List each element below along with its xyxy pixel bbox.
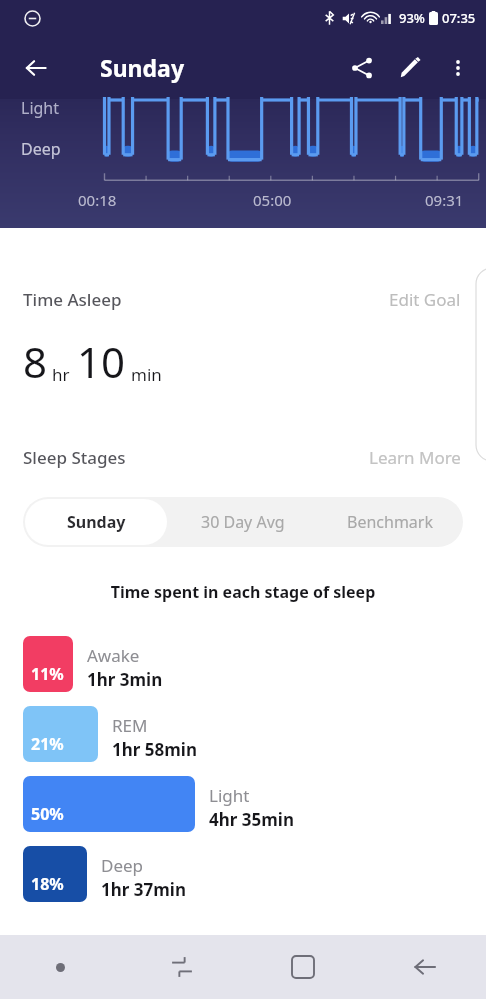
staticText: 11% [31, 663, 64, 685]
button[interactable]: 50% [23, 776, 470, 832]
staticText: 07:35 [442, 9, 476, 27]
button[interactable]: 11% [23, 636, 470, 692]
staticText: 1hr 37min [101, 878, 186, 901]
staticText: Edit Goal [389, 288, 461, 311]
staticText: Learn More [369, 446, 461, 469]
button[interactable]: Home [242, 935, 364, 999]
staticText: 18% [31, 873, 64, 895]
staticText: 8 [23, 333, 48, 390]
staticText: 05:00 [253, 190, 292, 210]
staticText: 1hr 3min [87, 668, 163, 691]
staticText: hr [52, 363, 70, 386]
button[interactable]: More options [434, 44, 482, 92]
staticText: Deep [21, 138, 61, 160]
button[interactable]: 18% [23, 846, 470, 902]
staticText: 21% [31, 733, 64, 755]
staticText: REM [112, 714, 148, 737]
button[interactable]: Back [364, 935, 486, 999]
staticText: Benchmark [347, 511, 433, 533]
staticText: 00:18 [78, 190, 117, 210]
button[interactable]: 30 Day Avg [169, 497, 316, 547]
staticText: Light [21, 97, 60, 119]
staticText: Time Asleep [23, 288, 122, 311]
button[interactable]: Sunday [25, 499, 167, 545]
staticText: Awake [87, 644, 140, 667]
staticText: 30 Day Avg [201, 511, 285, 533]
button[interactable]: Assistant [0, 935, 121, 999]
button[interactable]: 21% [23, 706, 470, 762]
button[interactable]: Share [338, 44, 386, 92]
staticText: 1hr 58min [112, 738, 197, 761]
button[interactable]: Recent apps [121, 935, 242, 999]
staticText: Light [209, 784, 250, 807]
staticText: 09:31 [425, 190, 464, 210]
staticText: 4hr 35min [209, 808, 294, 831]
staticText: Sleep Stages [23, 446, 126, 469]
staticText: Time spent in each stage of sleep [0, 581, 486, 603]
staticText: Sunday [100, 52, 185, 83]
staticText: Deep [101, 854, 144, 877]
staticText: 10 [77, 333, 126, 390]
button[interactable]: Edit Goal [387, 284, 463, 315]
staticText: 50% [31, 803, 64, 825]
staticText: Sunday [67, 511, 126, 533]
button[interactable]: Learn More [367, 442, 463, 473]
button[interactable]: Benchmark [316, 497, 463, 547]
button[interactable]: Edit [386, 44, 434, 92]
staticText: min [131, 363, 162, 386]
staticText: 93% [399, 9, 425, 27]
button[interactable]: Back [12, 44, 60, 92]
